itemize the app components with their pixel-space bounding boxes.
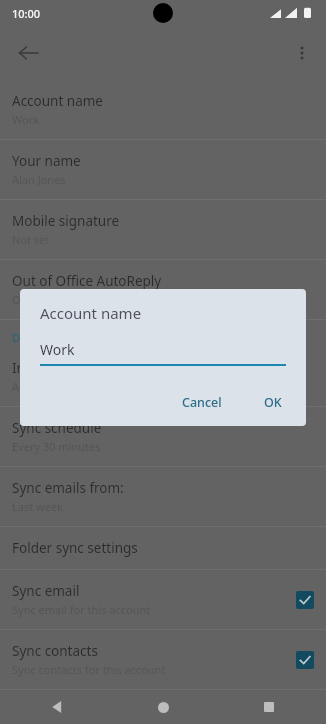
- staticText: Sync email for this account: [12, 602, 151, 617]
- staticText: Account name: [40, 303, 142, 323]
- button[interactable]: Home: [146, 690, 180, 724]
- staticText: Every 30 minutes: [12, 439, 101, 454]
- staticText: 10:00: [12, 6, 41, 21]
- staticText: Account name: [12, 92, 103, 110]
- button[interactable]: Recents: [252, 690, 286, 724]
- staticText: OK: [264, 394, 282, 411]
- staticText: Work: [40, 340, 75, 359]
- staticText: Sync contacts: [12, 642, 98, 660]
- staticText: Mobile signature: [12, 212, 120, 230]
- staticText: Sync schedule: [12, 419, 102, 437]
- staticText: Your name: [12, 152, 81, 170]
- button[interactable]: Mobile signature: [0, 200, 326, 259]
- staticText: Sync email: [12, 582, 80, 600]
- button[interactable]: Sync schedule: [0, 407, 326, 466]
- staticText: Alan Jones: [12, 172, 66, 187]
- button[interactable]: More options: [282, 33, 322, 73]
- staticText: Sync contacts for this account: [12, 662, 166, 677]
- button[interactable]: Cancel: [172, 387, 232, 418]
- staticText: Not set: [12, 232, 50, 247]
- staticText: Last week: [12, 499, 63, 514]
- button[interactable]: Sync emails from:: [0, 467, 326, 526]
- staticText: Sync emails from:: [12, 479, 124, 497]
- button[interactable]: Out of Office AutoReply: [0, 260, 326, 319]
- button[interactable]: Sync contacts: [0, 630, 326, 689]
- staticText: Work: [12, 112, 40, 127]
- button[interactable]: OK: [254, 387, 292, 418]
- staticText: Inbox check frequency: [12, 359, 155, 377]
- staticText: Off: [12, 292, 29, 307]
- staticText: Data usage: [12, 330, 72, 345]
- staticText: Sync calendar: [12, 702, 100, 712]
- staticText: Cancel: [182, 394, 222, 411]
- button[interactable]: Back: [40, 690, 74, 724]
- staticText: Automatic: [12, 379, 65, 394]
- staticText: Out of Office AutoReply: [12, 272, 162, 290]
- button[interactable]: Account name: [0, 80, 326, 139]
- staticText: Folder sync settings: [12, 539, 138, 557]
- button[interactable]: Folder sync settings: [0, 527, 326, 569]
- button[interactable]: Back: [6, 31, 50, 75]
- button[interactable]: Sync email: [0, 570, 326, 629]
- button[interactable]: Sync calendar: [0, 690, 326, 724]
- button[interactable]: Inbox check frequency: [0, 347, 326, 406]
- button[interactable]: Your name: [0, 140, 326, 199]
